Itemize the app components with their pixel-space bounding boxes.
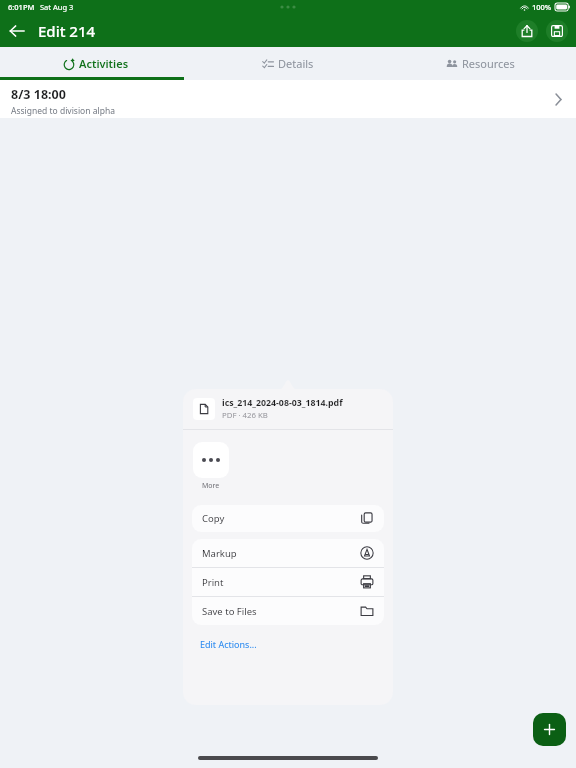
button[interactable]: 8/3 18:00 — [0, 80, 576, 118]
staticText: Details — [278, 56, 314, 71]
staticText: 100% — [532, 2, 552, 12]
button[interactable]: Print — [192, 568, 384, 596]
button[interactable]: Activities — [0, 47, 192, 80]
staticText: ics_214_2024-08-03_1814.pdf — [222, 397, 343, 409]
staticText: Save to Files — [202, 605, 257, 618]
button[interactable]: Save to Files — [192, 597, 384, 625]
staticText: Edit 214 — [38, 21, 96, 41]
button[interactable]: Details — [192, 47, 384, 80]
staticText: Resources — [462, 56, 515, 71]
staticText: Activities — [79, 56, 129, 71]
staticText: Markup — [202, 547, 237, 560]
staticText: Sat Aug 3 — [40, 2, 74, 12]
staticText: Edit Actions... — [200, 638, 257, 650]
staticText: Copy — [202, 512, 225, 525]
button[interactable]: Back — [0, 14, 34, 47]
button[interactable]: Edit Actions... — [183, 634, 393, 654]
staticText: Print — [202, 576, 224, 589]
staticText: Assigned to division alpha — [11, 105, 115, 117]
button[interactable]: Save — [546, 20, 568, 42]
button[interactable]: More — [193, 442, 229, 478]
button[interactable]: ics_214_2024-08-03_1814.pdf — [183, 389, 393, 429]
staticText: PDF · 426 KB — [222, 410, 268, 421]
staticText: More — [202, 481, 220, 491]
button[interactable]: Resources — [384, 47, 576, 80]
button[interactable]: Markup — [192, 539, 384, 567]
button[interactable]: Share — [516, 20, 538, 42]
staticText: 8/3 18:00 — [11, 86, 66, 103]
button[interactable]: Copy — [192, 505, 384, 532]
staticText: 6:01PM — [8, 2, 35, 12]
button[interactable]: Add — [533, 713, 566, 746]
